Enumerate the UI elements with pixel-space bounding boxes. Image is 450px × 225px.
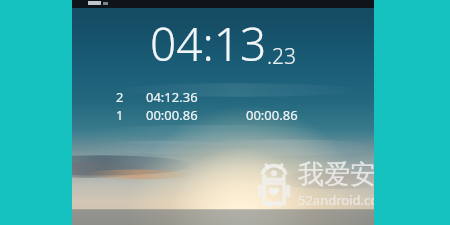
- staticText: 我爱安卓: [298, 158, 374, 191]
- staticText: 04:13: [150, 12, 267, 75]
- staticText: 2: [116, 88, 124, 103]
- button[interactable]: 2: [72, 88, 374, 103]
- staticText: 1: [116, 106, 124, 121]
- button[interactable]: 1: [72, 106, 374, 121]
- staticText: 00:00.86: [246, 106, 298, 121]
- staticText: .23: [267, 42, 297, 71]
- staticText: 52android.com: [298, 191, 374, 209]
- staticText: 04:12.36: [146, 88, 198, 103]
- other: 52android logo: [256, 161, 292, 207]
- button[interactable]: 04:13: [72, 8, 374, 78]
- staticText: 00:00.86: [146, 106, 198, 121]
